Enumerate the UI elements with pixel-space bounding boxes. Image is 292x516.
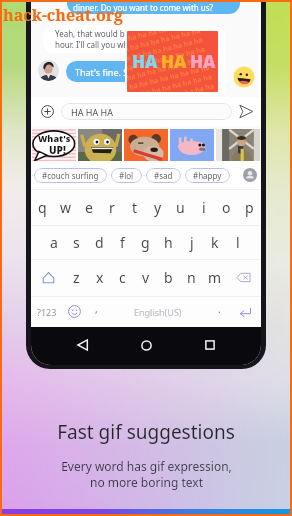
button[interactable]: #happy	[185, 168, 230, 183]
staticText: HA	[190, 50, 216, 73]
staticText: j	[190, 233, 194, 252]
button[interactable]: Home	[132, 331, 160, 359]
button[interactable]: #couch surfing	[34, 168, 107, 183]
button[interactable]: u	[169, 189, 192, 225]
staticText: Yeah, that would be great. I'll be ready…	[55, 28, 220, 50]
staticText: Fast gif suggestions	[57, 419, 235, 445]
button[interactable]: k	[203, 225, 226, 259]
staticText: t	[132, 198, 138, 217]
button[interactable]: q	[31, 189, 54, 225]
staticText: HA	[132, 50, 158, 73]
button[interactable]: r	[100, 189, 123, 225]
button[interactable]: m	[203, 259, 226, 296]
staticText: z	[73, 268, 80, 287]
staticText: #lol	[119, 170, 134, 181]
button[interactable]: t	[123, 189, 146, 225]
button[interactable]: c	[111, 259, 134, 296]
staticText: i	[202, 198, 206, 217]
staticText: Every word has gif expression, no more b…	[61, 458, 232, 490]
staticText: c	[119, 268, 126, 287]
staticText: s	[73, 233, 80, 252]
staticText: w	[60, 198, 72, 217]
button[interactable]: e	[77, 189, 100, 225]
button[interactable]: GIF suggestion	[32, 129, 76, 161]
staticText: n	[187, 268, 196, 287]
staticText: HA	[161, 50, 187, 73]
button[interactable]: GIF suggestion	[170, 129, 214, 161]
button[interactable]: b	[157, 259, 180, 296]
staticText: q	[38, 198, 47, 217]
button[interactable]: English(US)	[106, 296, 209, 327]
staticText: v	[142, 268, 150, 287]
staticText: o	[222, 198, 231, 217]
button[interactable]: o	[215, 189, 238, 225]
button[interactable]: ?123	[31, 296, 62, 327]
staticText: x	[96, 268, 104, 287]
button[interactable]: #lol	[111, 168, 142, 183]
staticText: e	[85, 198, 93, 217]
button[interactable]: l	[226, 225, 249, 259]
button[interactable]: f	[111, 225, 134, 259]
staticText: hack-cheat.org	[3, 4, 124, 26]
staticText: f	[120, 233, 125, 252]
staticText: k	[211, 233, 219, 252]
staticText: UP!	[49, 143, 66, 157]
button[interactable]: g	[134, 225, 157, 259]
staticText: HA HA HA	[71, 106, 113, 118]
staticText: m	[208, 268, 222, 287]
staticText: d	[95, 233, 104, 252]
button[interactable]: GIF suggestion	[78, 129, 122, 161]
button[interactable]: Shift	[31, 259, 65, 296]
button[interactable]: GIF suggestion	[216, 129, 260, 161]
button[interactable]: n	[180, 259, 203, 296]
button[interactable]: Emoji	[62, 296, 86, 327]
staticText: What's	[38, 132, 71, 144]
button[interactable]: Enter	[229, 296, 261, 327]
staticText: y	[154, 198, 162, 217]
button[interactable]: d	[88, 225, 111, 259]
button[interactable]: Recent apps	[196, 331, 224, 359]
staticText: That's fine. See you at 7!	[75, 66, 177, 78]
staticText: b	[164, 268, 173, 287]
button[interactable]: GIF suggestion	[124, 129, 168, 161]
button[interactable]: x	[88, 259, 111, 296]
button[interactable]: z	[65, 259, 88, 296]
button[interactable]: w	[54, 189, 77, 225]
button[interactable]: Send	[236, 97, 256, 126]
staticText: Hey! We are going out tonight for a dinn…	[73, 0, 214, 13]
staticText: r	[109, 198, 115, 217]
button[interactable]: i	[192, 189, 215, 225]
staticText: ,	[95, 302, 98, 316]
button[interactable]: Backspace	[226, 259, 261, 296]
staticText: English(US)	[134, 306, 182, 318]
button[interactable]: ,	[86, 296, 106, 327]
staticText: .	[218, 302, 221, 316]
staticText: p	[245, 198, 254, 217]
staticText: l	[236, 233, 240, 252]
staticText: h	[164, 233, 173, 252]
button[interactable]: .	[209, 296, 229, 327]
button[interactable]: s	[65, 225, 88, 259]
staticText: #sad	[154, 170, 173, 181]
button[interactable]: h	[157, 225, 180, 259]
button[interactable]: y	[146, 189, 169, 225]
staticText: a	[50, 233, 58, 252]
staticText: ?123	[37, 306, 57, 318]
button[interactable]: #sad	[146, 168, 181, 183]
button[interactable]: More tags	[243, 168, 257, 182]
button[interactable]: a	[42, 225, 65, 259]
staticText: g	[141, 233, 150, 252]
button[interactable]: Back	[68, 331, 96, 359]
staticText: #happy	[193, 170, 222, 181]
button[interactable]: p	[238, 189, 261, 225]
staticText: #couch surfing	[42, 170, 99, 181]
staticText: u	[176, 198, 185, 217]
button[interactable]: Add attachment	[33, 97, 62, 126]
button[interactable]: HA HA HA	[61, 103, 232, 120]
button[interactable]: v	[134, 259, 157, 296]
button[interactable]: j	[180, 225, 203, 259]
